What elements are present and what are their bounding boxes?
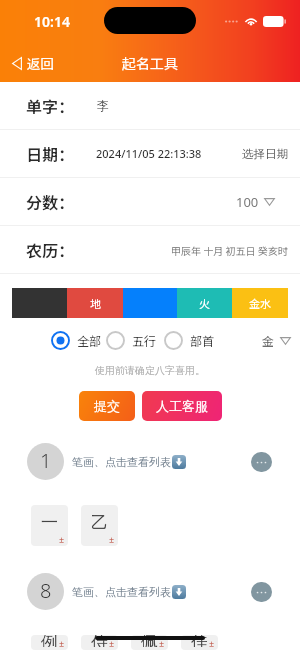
staticText: ± [109,637,115,649]
button[interactable]: 地 [67,288,123,318]
staticText: ± [159,637,165,649]
staticText: 返回 [27,53,54,73]
button[interactable]: 佩 [131,635,168,650]
button[interactable]: 8 [27,573,64,610]
button[interactable]: 乙 [81,505,118,546]
button[interactable]: 提交 [79,391,135,421]
button[interactable]: 1 [27,443,64,480]
staticText: 农历： [26,238,75,261]
staticText: 2024/11/05 22:13:38 [96,146,202,161]
button[interactable]: 一 [31,505,68,546]
staticText: 李 [97,98,109,113]
staticText: 佩 [141,635,158,647]
staticText: 笔画、点击查看列表 [72,455,171,469]
staticText: 提交 [94,398,120,414]
staticText: 日期： [26,142,75,165]
staticText: 火 [199,295,210,311]
button[interactable]: 全部 [51,331,102,350]
button[interactable]: 更多 [251,582,272,602]
staticText: 人工客服 [156,398,208,414]
staticText: 部首 [190,332,215,349]
button[interactable]: 侍 [81,635,118,650]
staticText: 乙 [91,512,108,533]
button[interactable]: 100 [77,193,275,211]
staticText: 8 [40,577,52,604]
button[interactable]: 金 [262,332,300,349]
staticText: 侍 [91,635,108,647]
staticText: 佳 [191,635,208,647]
staticText: 分数： [26,190,75,213]
staticText: 例 [41,635,58,647]
button[interactable]: 笔画、点击查看列表 [72,455,186,469]
staticText: 1 [40,447,52,474]
staticText: 金水 [249,295,271,311]
button[interactable]: 选择日期 [242,147,300,161]
staticText: ± [59,533,65,545]
staticText: ± [109,533,115,545]
button[interactable]: 火 [177,288,232,318]
staticText: 全部 [77,332,102,349]
button[interactable]: 五行 [106,331,157,350]
staticText: 甲辰年 十月 初五日 癸亥时 [171,243,288,257]
button[interactable]: 佳 [181,635,218,650]
button[interactable]: 返回 [0,47,62,79]
staticText: 五行 [132,332,157,349]
button[interactable]: 笔画、点击查看列表 [72,585,186,599]
staticText: 起名工具 [122,53,178,73]
staticText: 笔画、点击查看列表 [72,585,171,599]
staticText: 使用前请确定八字喜用。 [0,364,300,377]
staticText: 地 [90,295,101,311]
button[interactable]: 部首 [164,331,215,350]
staticText: 一 [41,512,58,533]
staticText: 100 [236,193,259,211]
staticText: ± [59,637,65,649]
staticText: 10:14 [34,12,70,31]
staticText: 单字： [26,94,75,117]
staticText: 金 [262,332,275,349]
button[interactable]: 例 [31,635,68,650]
button[interactable]: 人工客服 [142,391,222,421]
button[interactable]: 更多 [251,452,272,472]
staticText: ± [209,637,215,649]
button[interactable]: 金水 [232,288,288,318]
